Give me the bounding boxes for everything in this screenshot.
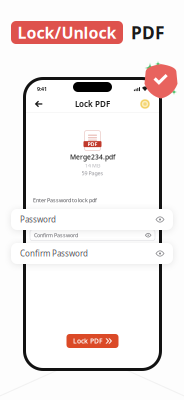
- button[interactable]: Confirm Password: [11, 243, 173, 264]
- staticText: 9:41: [37, 85, 47, 93]
- button[interactable]: Lock PDF: [66, 334, 118, 348]
- staticText: Confirm Password: [20, 248, 88, 259]
- button[interactable]: Credits: [140, 99, 150, 109]
- button[interactable]: Confirm Password: [30, 230, 155, 241]
- staticText: Password: [20, 214, 56, 225]
- staticText: 14 MB: [85, 162, 100, 169]
- staticText: PDF: [87, 141, 97, 148]
- staticText: Lock PDF: [73, 337, 103, 345]
- button[interactable]: Password: [11, 209, 173, 230]
- staticText: Lock PDF: [75, 99, 110, 109]
- staticText: Merge234.pdf: [70, 153, 115, 161]
- staticText: Lock/Unlock: [17, 22, 116, 43]
- button[interactable]: Password: [30, 212, 155, 223]
- staticText: Password: [34, 214, 58, 221]
- staticText: PDF: [131, 21, 165, 44]
- staticText: Enter Password to lock pdf: [33, 197, 97, 204]
- button[interactable]: Back: [35, 100, 42, 107]
- staticText: Confirm Password: [34, 232, 78, 239]
- staticText: 59 Pages: [81, 169, 103, 177]
